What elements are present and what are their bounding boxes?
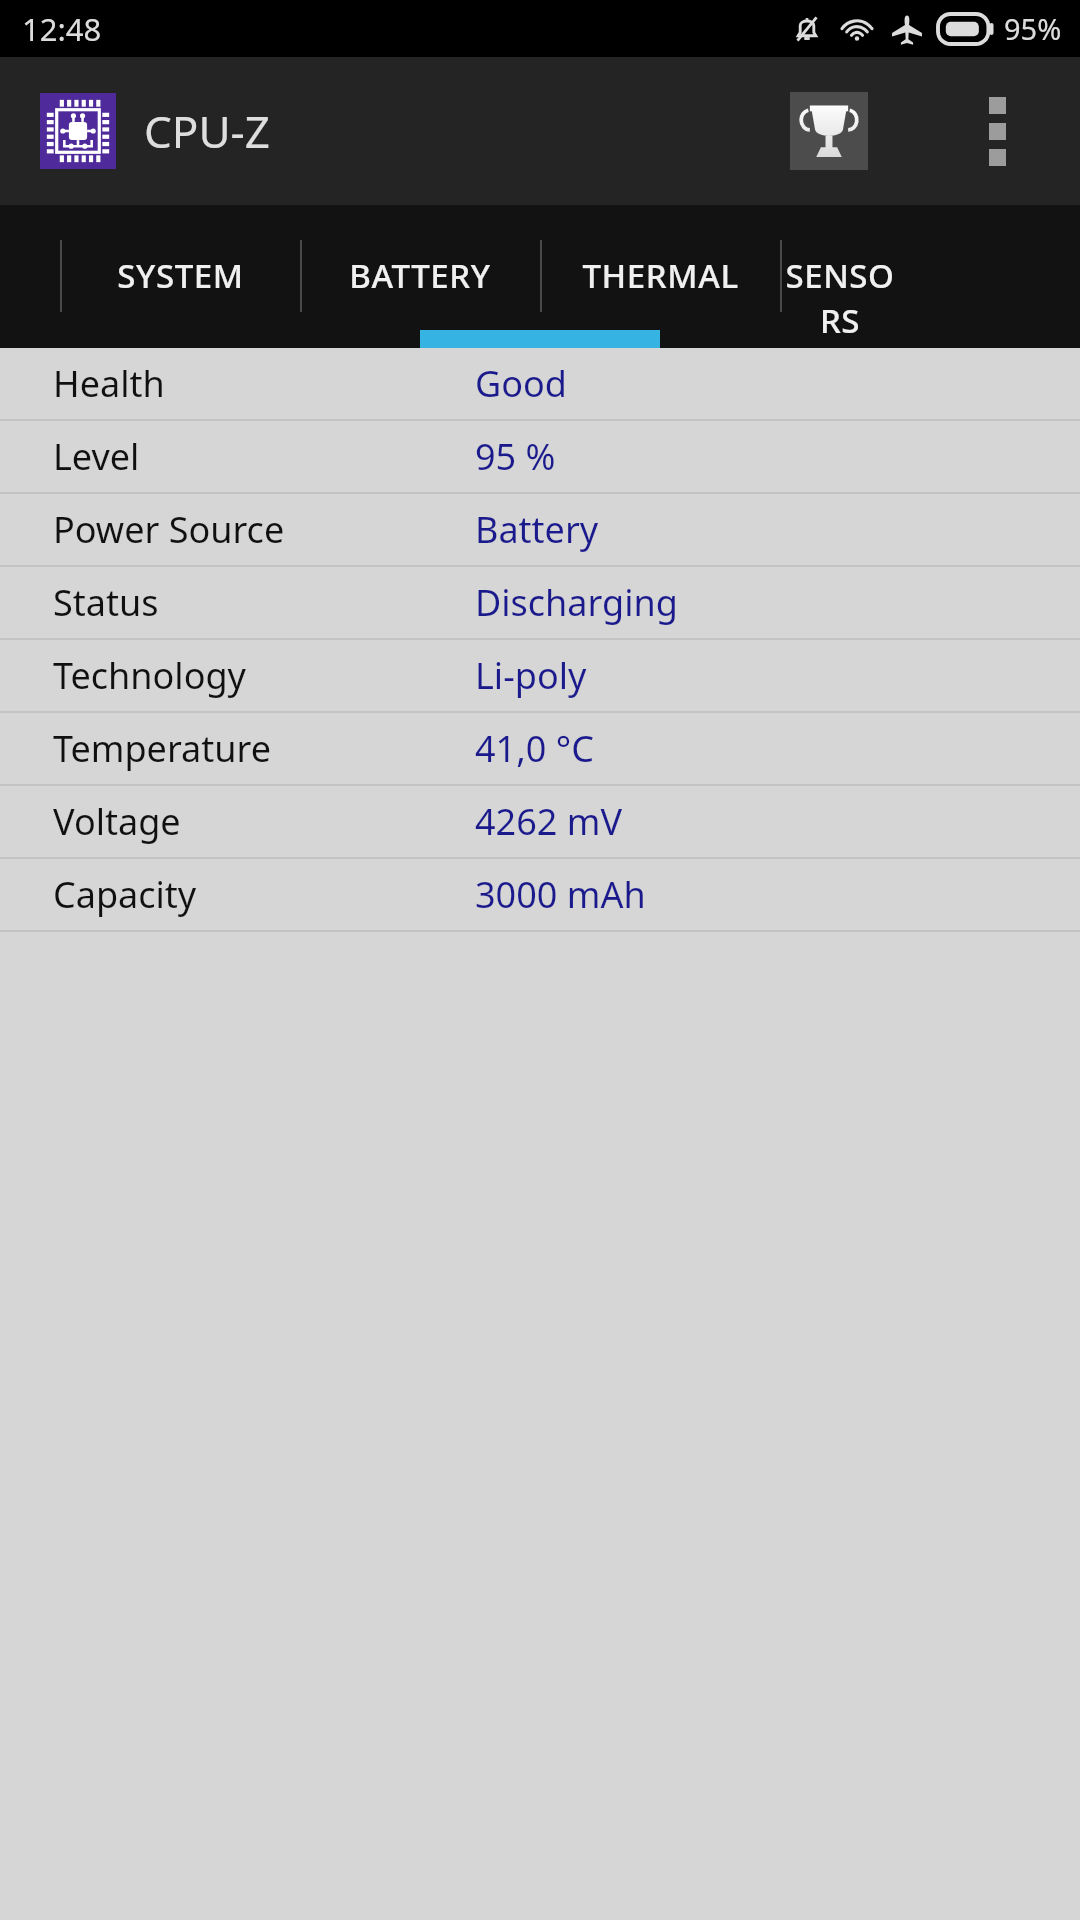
staticText: Discharging — [475, 578, 678, 627]
staticText: CPU-Z — [144, 101, 270, 161]
button[interactable]: BATTERY — [300, 205, 540, 348]
staticText: Health — [53, 359, 423, 408]
staticText: Battery — [475, 505, 599, 554]
staticText: 3000 mAh — [475, 870, 646, 919]
staticText: Capacity — [53, 870, 423, 919]
staticText: SENSORS — [780, 253, 900, 343]
staticText: THERMAL — [582, 253, 739, 298]
staticText: 12:48 — [22, 8, 102, 50]
staticText: 41,0 °C — [475, 724, 594, 773]
button[interactable]: Benchmark — [790, 92, 868, 170]
staticText: 95% — [1004, 9, 1062, 48]
staticText: 4262 mV — [475, 797, 622, 846]
button[interactable]: Power Source — [0, 494, 1080, 565]
staticText: Li-poly — [475, 651, 587, 700]
button[interactable]: Technology — [0, 640, 1080, 711]
staticText: 95 % — [475, 432, 556, 481]
button[interactable]: SENSORS — [780, 205, 900, 348]
staticText: Voltage — [53, 797, 423, 846]
button[interactable]: Voltage — [0, 786, 1080, 857]
staticText: Level — [53, 432, 423, 481]
button[interactable]: SYSTEM — [60, 205, 300, 348]
button[interactable]: Level — [0, 421, 1080, 492]
button[interactable]: Status — [0, 567, 1080, 638]
staticText: Power Source — [53, 505, 423, 554]
button[interactable]: Capacity — [0, 859, 1080, 930]
staticText: Technology — [53, 651, 423, 700]
button[interactable]: Temperature — [0, 713, 1080, 784]
button[interactable]: Health — [0, 348, 1080, 419]
button[interactable]: More options — [952, 71, 1042, 191]
staticText: SYSTEM — [117, 253, 244, 298]
staticText: Status — [53, 578, 423, 627]
staticText: Temperature — [53, 724, 423, 773]
staticText: BATTERY — [349, 253, 491, 298]
button[interactable]: THERMAL — [540, 205, 780, 348]
staticText: Good — [475, 359, 567, 408]
